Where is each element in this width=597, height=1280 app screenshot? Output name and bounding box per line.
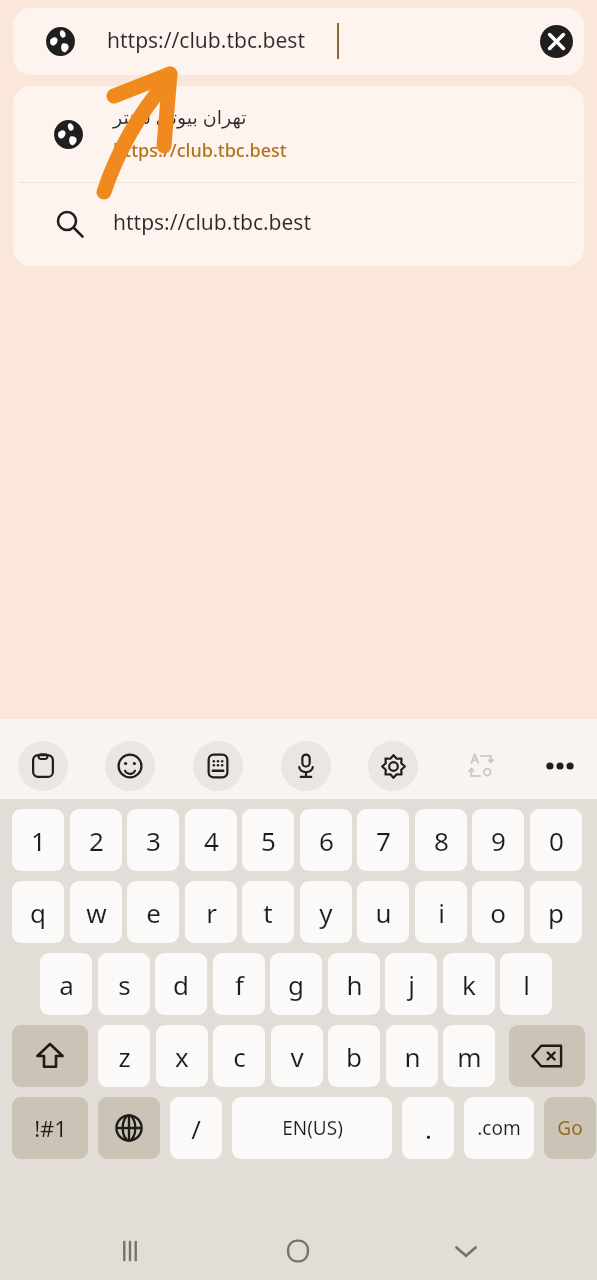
button[interactable]: w <box>70 881 122 943</box>
staticText: z <box>118 1039 131 1074</box>
button[interactable]: d <box>155 953 207 1015</box>
button[interactable]: o <box>472 881 524 943</box>
button[interactable]: 2 <box>70 809 122 871</box>
button[interactable]: 4 <box>185 809 237 871</box>
staticText: Go <box>557 1115 583 1141</box>
staticText: f <box>235 967 244 1002</box>
button[interactable]: b <box>328 1025 380 1087</box>
staticText: تهران بیوتی سنتر <box>113 104 247 130</box>
button[interactable]: Settings <box>368 741 418 791</box>
button[interactable]: EN(US) <box>232 1097 392 1159</box>
staticText: 8 <box>434 823 449 858</box>
button[interactable]: More options <box>535 741 585 791</box>
button[interactable]: s <box>98 953 150 1015</box>
button[interactable]: Recent apps <box>100 1221 160 1280</box>
staticText: 6 <box>319 823 334 858</box>
button[interactable]: 3 <box>127 809 179 871</box>
button[interactable]: i <box>415 881 467 943</box>
button[interactable]: k <box>443 953 495 1015</box>
button[interactable]: https://club.tbc.best <box>13 183 584 266</box>
button[interactable]: 0 <box>530 809 582 871</box>
staticText: k <box>462 967 476 1002</box>
button[interactable]: !#1 <box>12 1097 88 1159</box>
staticText: https://club.tbc.best <box>113 208 311 237</box>
staticText: 3 <box>146 823 161 858</box>
button[interactable]: .com <box>464 1097 534 1159</box>
staticText: y <box>319 895 333 930</box>
staticText: https://club.tbc.best <box>107 26 305 55</box>
staticText: c <box>233 1039 246 1074</box>
button[interactable]: r <box>185 881 237 943</box>
button[interactable]: 9 <box>472 809 524 871</box>
button[interactable]: a <box>40 953 92 1015</box>
button[interactable]: v <box>271 1025 323 1087</box>
button[interactable]: z <box>98 1025 150 1087</box>
staticText: !#1 <box>34 1113 67 1143</box>
staticText: p <box>548 895 564 930</box>
staticText: d <box>173 967 189 1002</box>
button[interactable]: e <box>127 881 179 943</box>
button[interactable]: c <box>213 1025 265 1087</box>
button[interactable]: l <box>500 953 552 1015</box>
staticText: j <box>408 967 415 1002</box>
staticText: l <box>523 967 530 1002</box>
staticText: t <box>263 895 273 930</box>
button[interactable]: / <box>170 1097 222 1159</box>
staticText: 7 <box>376 823 391 858</box>
button[interactable]: Emoji <box>105 741 155 791</box>
staticText: 0 <box>549 823 564 858</box>
staticText: b <box>346 1039 362 1074</box>
staticText: 4 <box>204 823 219 858</box>
button[interactable]: Clipboard <box>18 741 68 791</box>
staticText: a <box>59 967 74 1002</box>
button[interactable]: https://club.tbc.best <box>13 8 584 75</box>
button[interactable]: q <box>12 881 64 943</box>
button[interactable]: Keypad <box>193 741 243 791</box>
staticText: g <box>288 967 304 1002</box>
staticText: 9 <box>491 823 506 858</box>
staticText: n <box>404 1039 421 1074</box>
staticText: 2 <box>89 823 104 858</box>
staticText: 1 <box>31 823 46 858</box>
button[interactable]: . <box>402 1097 454 1159</box>
button[interactable]: Hide keyboard <box>436 1221 496 1280</box>
button[interactable]: j <box>385 953 437 1015</box>
staticText: x <box>175 1039 189 1074</box>
staticText: https://club.tbc.best <box>113 138 287 163</box>
staticText: q <box>30 895 46 930</box>
button[interactable]: تهران بیوتی سنتر <box>13 86 584 182</box>
button[interactable]: Go <box>544 1097 596 1159</box>
staticText: i <box>438 895 445 930</box>
staticText: m <box>457 1039 482 1074</box>
button[interactable]: Shift <box>12 1025 88 1087</box>
staticText: w <box>86 895 107 930</box>
button[interactable]: Home <box>268 1221 328 1280</box>
staticText: 5 <box>261 823 276 858</box>
button[interactable]: f <box>213 953 265 1015</box>
button[interactable]: p <box>530 881 582 943</box>
staticText: s <box>118 967 131 1002</box>
staticText: / <box>191 1111 201 1146</box>
button[interactable]: Clear text <box>540 25 573 58</box>
button[interactable]: 5 <box>242 809 294 871</box>
button[interactable]: t <box>242 881 294 943</box>
staticText: o <box>490 895 506 930</box>
button[interactable]: g <box>270 953 322 1015</box>
button[interactable]: Change language <box>98 1097 160 1159</box>
button[interactable]: Backspace <box>509 1025 585 1087</box>
button[interactable]: Voice input <box>281 741 331 791</box>
button[interactable]: y <box>300 881 352 943</box>
button[interactable]: 7 <box>357 809 409 871</box>
button[interactable]: Translate <box>456 741 506 791</box>
staticText: h <box>346 967 363 1002</box>
button[interactable]: u <box>357 881 409 943</box>
button[interactable]: h <box>328 953 380 1015</box>
button[interactable]: 1 <box>12 809 64 871</box>
button[interactable]: 8 <box>415 809 467 871</box>
button[interactable]: 6 <box>300 809 352 871</box>
staticText: e <box>146 895 161 930</box>
button[interactable]: n <box>386 1025 438 1087</box>
button[interactable]: x <box>156 1025 208 1087</box>
staticText: v <box>290 1039 304 1074</box>
button[interactable]: m <box>443 1025 495 1087</box>
